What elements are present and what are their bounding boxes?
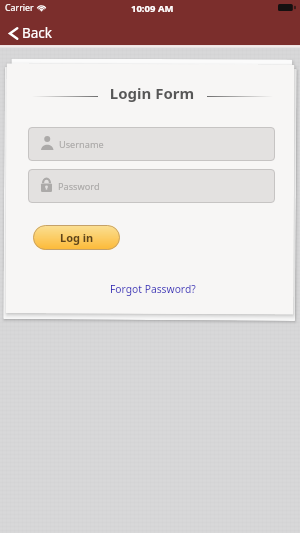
button[interactable]: Username (28, 127, 275, 161)
staticText: Password (58, 180, 100, 193)
button[interactable]: Back (0, 20, 65, 46)
staticText: Back (22, 24, 53, 42)
button[interactable]: Password (28, 169, 275, 203)
staticText: 10:09 AM (131, 2, 174, 15)
button[interactable]: Log in (33, 225, 120, 250)
other: Back (9, 27, 18, 40)
staticText: Forgot Password? (110, 282, 196, 296)
staticText: Username (59, 138, 104, 151)
staticText: Carrier (5, 2, 34, 14)
staticText: Login Form (2, 83, 300, 103)
button[interactable]: Forgot Password? (107, 280, 199, 298)
staticText: Log in (60, 230, 94, 245)
